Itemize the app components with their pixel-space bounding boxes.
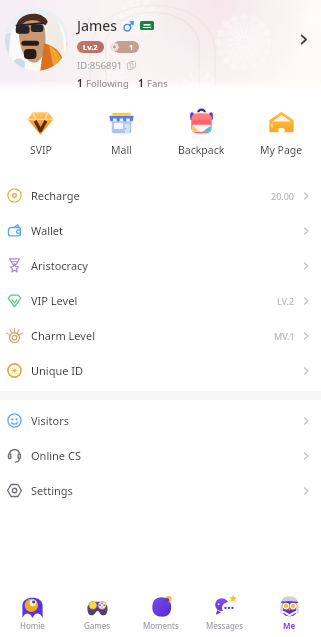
staticText: Wallet	[31, 223, 64, 238]
staticText: Homie	[20, 620, 45, 631]
staticText: My Page	[260, 143, 303, 157]
staticText: LV.2	[277, 295, 295, 307]
staticText: James	[77, 16, 118, 35]
button[interactable]: Moments	[129, 590, 193, 631]
staticText: Games	[84, 620, 111, 631]
staticText: Mall	[111, 143, 132, 157]
staticText: Charm Level	[31, 328, 95, 343]
button[interactable]: Homie	[0, 590, 65, 631]
button[interactable]: Messages	[193, 590, 257, 631]
staticText: ID:856891	[77, 59, 123, 72]
button[interactable]: Backpack	[161, 94, 241, 157]
staticText: Fans	[147, 77, 168, 90]
button[interactable]: Wallet	[0, 213, 321, 248]
staticText: 1	[77, 76, 83, 90]
staticText: SVIP	[30, 143, 52, 157]
staticText: Visitors	[31, 413, 69, 428]
staticText: Aristocracy	[31, 258, 88, 273]
button[interactable]: Visitors	[0, 403, 321, 438]
staticText: Settings	[31, 483, 73, 498]
button[interactable]: Unique ID	[0, 353, 321, 388]
staticText: 1	[129, 42, 134, 52]
staticText: Lv.2	[83, 42, 98, 52]
button[interactable]: Profile avatar	[5, 8, 68, 71]
staticText: MV.1	[274, 330, 295, 342]
staticText: Following	[86, 77, 129, 90]
button[interactable]: Games	[65, 590, 129, 631]
button[interactable]: SVIP	[0, 94, 81, 157]
staticText: Backpack	[178, 143, 225, 157]
button[interactable]: Charm Level	[0, 318, 321, 353]
staticText: Online CS	[31, 448, 81, 463]
staticText: Recharge	[31, 188, 80, 203]
button[interactable]: Me	[257, 590, 321, 631]
button[interactable]: Open profile	[292, 28, 314, 50]
staticText: VIP Level	[31, 293, 78, 308]
button[interactable]: Mall	[81, 94, 161, 157]
staticText: Unique ID	[31, 363, 84, 378]
staticText: Messages	[206, 620, 244, 631]
button[interactable]: My Page	[241, 94, 321, 157]
button[interactable]: Online CS	[0, 438, 321, 473]
staticText: Moments	[143, 620, 179, 631]
button[interactable]: Settings	[0, 473, 321, 508]
button[interactable]: Recharge	[0, 178, 321, 213]
staticText: 20.00	[271, 190, 295, 202]
staticText: 1	[138, 76, 144, 90]
staticText: Me	[283, 620, 296, 631]
button[interactable]: VIP Level	[0, 283, 321, 318]
button[interactable]: Aristocracy	[0, 248, 321, 283]
